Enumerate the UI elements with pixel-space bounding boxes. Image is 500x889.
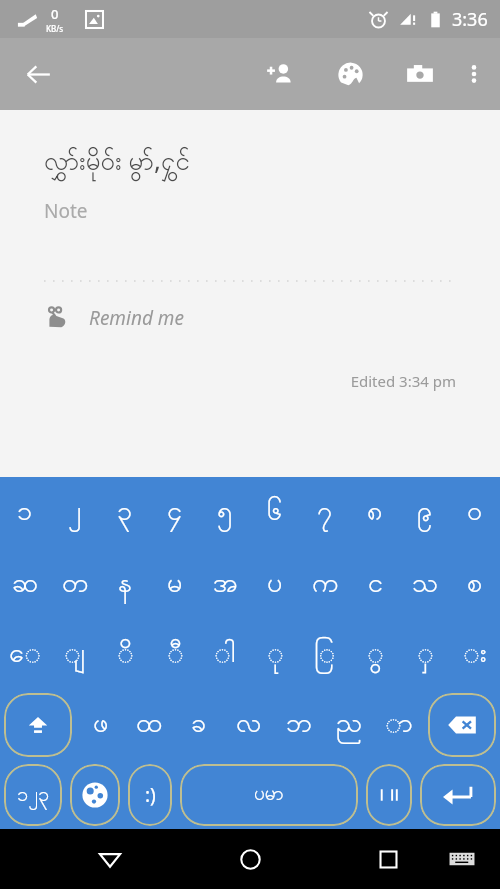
staticText: ဘ [286,705,312,745]
button[interactable]: Space [180,764,358,826]
button[interactable]: က [300,549,350,621]
staticText: ွ [367,635,384,675]
button[interactable]: ီ [150,621,200,689]
button[interactable]: Back [14,50,62,98]
staticText: ခ [191,705,207,745]
button[interactable]: ြ [300,621,350,689]
staticText: 0 [51,5,59,23]
staticText: က [312,565,339,605]
staticText: သ [412,565,439,605]
button[interactable]: Add image [398,52,442,96]
button[interactable]: ခ [174,693,224,757]
button[interactable]: ည [324,693,374,757]
button[interactable]: ု [250,621,300,689]
button[interactable]: Numbers [4,764,62,826]
button[interactable]: Note [44,198,500,224]
button[interactable]: Backspace [428,693,496,757]
button[interactable]: သ [400,549,450,621]
button[interactable]: မ [150,549,200,621]
staticText: ၀ [467,493,483,533]
button[interactable]: ပ [250,549,300,621]
staticText: း [463,635,487,675]
button[interactable]: ေ [0,621,50,689]
staticText: :) [145,782,156,808]
button[interactable]: ှ [400,621,450,689]
button[interactable]: Switch keyboard [438,835,486,883]
staticText: ာ [385,705,413,745]
staticText: ၂ [68,493,82,533]
staticText: ပမာ [254,781,284,809]
button[interactable]: ၉ [400,477,450,549]
staticText: န [118,565,132,605]
staticText: ဖ [93,705,109,745]
button[interactable]: န [100,549,150,621]
button[interactable]: ၅ [200,477,250,549]
button[interactable]: ၀ [450,477,500,549]
button[interactable]: Enter [420,764,496,826]
button[interactable]: ၃ [100,477,150,549]
staticText: Remind me [89,305,184,331]
button[interactable]: Remind me [44,304,500,331]
button[interactable]: Emoji [128,764,172,826]
staticText: ၉ [417,493,433,533]
staticText: ၆ [267,493,283,533]
staticText: ိ [117,635,134,675]
staticText: ၄ [167,493,183,533]
button[interactable]: တ [50,549,100,621]
button[interactable]: ၂ [50,477,100,549]
staticText: ါ [214,635,236,675]
button[interactable]: ွ [350,621,400,689]
button[interactable]: ၈ [350,477,400,549]
button[interactable]: ိ [100,621,150,689]
button[interactable]: လ [224,693,274,757]
button[interactable]: ဖ [76,693,125,757]
staticText: 3:36 [452,7,488,32]
staticText: င [368,565,383,605]
button[interactable]: ာ [374,693,424,757]
staticText: ပ [267,565,283,605]
staticText: ျ [64,635,86,675]
button[interactable]: Change language [70,764,120,826]
staticText: ထ [136,705,163,745]
button[interactable]: စ [450,549,500,621]
button[interactable]: ၆ [250,477,300,549]
staticText: ြ [314,635,336,675]
staticText: ု [267,635,284,675]
staticText: ည [336,705,363,745]
button[interactable]: Hide keyboard [86,835,134,883]
staticText: ၅ [217,493,233,533]
button[interactable]: ဘ [274,693,324,757]
button[interactable]: ဆ [0,549,50,621]
staticText: ၇ [317,493,333,533]
button[interactable]: Punctuation [366,764,412,826]
staticText: မ [167,565,183,605]
button[interactable]: Change color [328,52,372,96]
staticText: ေ [9,635,41,675]
button[interactable]: ၇ [300,477,350,549]
button[interactable]: Recents [364,835,412,883]
button[interactable]: Add collaborator [258,52,302,96]
staticText: စ [467,565,483,605]
staticText: ဆ [12,565,39,605]
staticText: ၃ [117,493,133,533]
staticText: ၁၂၃ [17,781,50,810]
button[interactable]: More options [452,52,496,96]
button[interactable]: အ [200,549,250,621]
button[interactable]: ါ [200,621,250,689]
staticText: KB/s [46,23,64,34]
staticText: တ [62,565,89,605]
button[interactable]: င [350,549,400,621]
button[interactable]: း [450,621,500,689]
button[interactable]: ထ [125,693,174,757]
button[interactable]: ျ [50,621,100,689]
button[interactable]: ၁ [0,477,50,549]
staticText: ီ [167,635,184,675]
staticText: လ [236,705,262,745]
staticText: အ [213,565,238,605]
button[interactable]: ၄ [150,477,200,549]
button[interactable]: လွှာ်းမိုဝ်း မွာ်,ႁွင် [44,142,476,182]
staticText: ှ [417,635,434,675]
button[interactable]: Shift [4,693,72,757]
staticText: ၈ [367,493,383,533]
button[interactable]: Home [226,835,274,883]
